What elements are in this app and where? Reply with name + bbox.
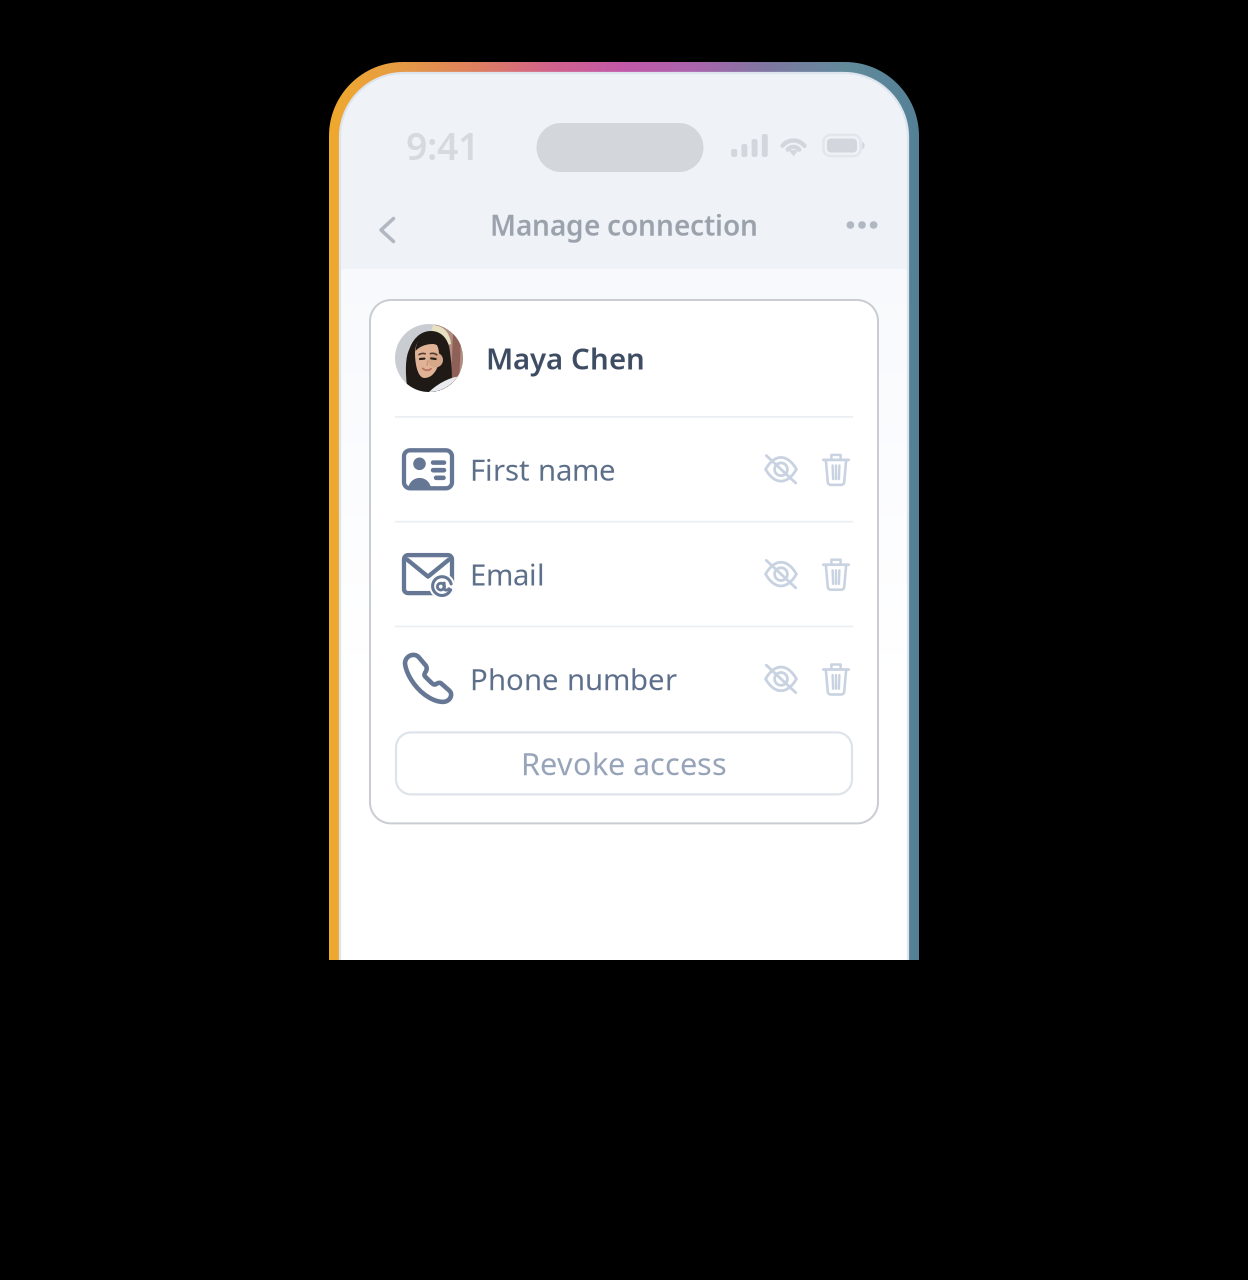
- button[interactable]: Delete Phone number: [812, 627, 866, 730]
- button[interactable]: More options: [834, 196, 888, 270]
- staticText: First name: [470, 450, 616, 489]
- button[interactable]: Hide First name: [750, 418, 812, 521]
- staticText: 9:41: [406, 121, 479, 170]
- staticText: Manage connection: [490, 206, 758, 244]
- button[interactable]: Hide Email: [750, 523, 812, 626]
- button[interactable]: Revoke access: [396, 732, 852, 794]
- button[interactable]: Delete First name: [812, 418, 866, 521]
- button[interactable]: Hide Phone number: [750, 627, 812, 730]
- button[interactable]: Back: [360, 196, 414, 270]
- button[interactable]: Phone number: [404, 627, 677, 730]
- button[interactable]: First name: [404, 418, 616, 521]
- staticText: Maya Chen: [486, 338, 645, 377]
- button[interactable]: Maya Chen: [370, 300, 878, 416]
- staticText: Email: [470, 555, 545, 594]
- button[interactable]: Delete Email: [812, 523, 866, 626]
- staticText: Revoke access: [521, 743, 727, 784]
- button[interactable]: Email: [404, 523, 545, 626]
- staticText: Phone number: [470, 659, 677, 698]
